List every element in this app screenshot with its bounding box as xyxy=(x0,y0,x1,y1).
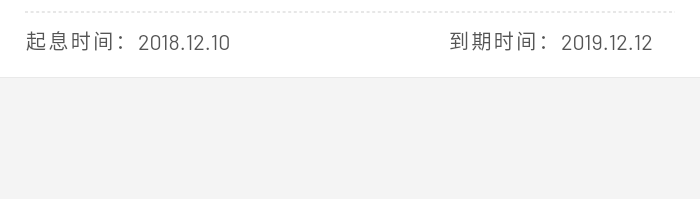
button[interactable]: 到期时间： xyxy=(449,26,653,55)
staticText: 到期时间： xyxy=(449,26,561,55)
staticText: 起息时间： xyxy=(26,26,138,55)
button[interactable]: 起息时间： xyxy=(26,26,231,55)
staticText: 2018.12.10 xyxy=(138,28,231,54)
staticText: 2019.12.12 xyxy=(561,28,653,54)
